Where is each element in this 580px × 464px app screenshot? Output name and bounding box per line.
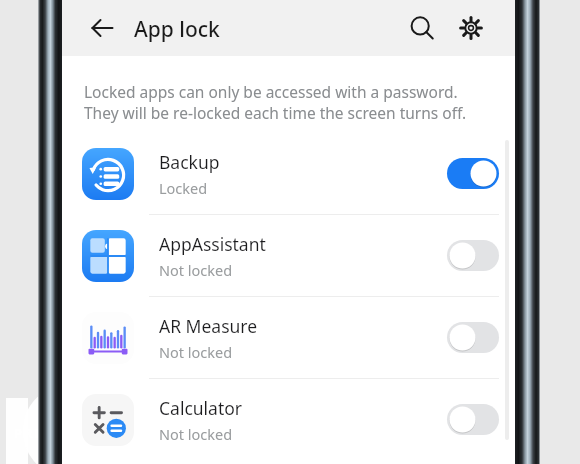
button[interactable]: Back [74,0,130,56]
staticText: Calculator [159,396,243,420]
button[interactable]: Calculator [62,379,515,460]
staticText: Locked [159,178,208,198]
staticText: Not locked [159,342,233,362]
staticText: App lock [134,15,220,44]
staticText: PRESS [14,424,63,442]
button[interactable]: Locked, on [447,158,499,189]
button[interactable]: Not locked, off [447,240,499,271]
staticText: They will be re-locked each time the scr… [84,102,467,123]
staticText: Locked apps can only be accessed with a … [84,81,458,102]
button[interactable]: Settings [443,0,499,56]
staticText: Not locked [159,424,233,444]
button[interactable]: AppAssistant [62,215,515,296]
button[interactable]: Not locked, off [447,322,499,353]
button[interactable]: Search [394,0,450,56]
button[interactable]: Not locked, off [447,404,499,435]
staticText: AppAssistant [159,232,266,256]
button[interactable]: Backup [62,133,515,214]
staticText: AR Measure [159,314,258,338]
staticText: Backup [159,150,220,174]
staticText: Not locked [159,260,233,280]
button[interactable]: AR Measure [62,297,515,378]
